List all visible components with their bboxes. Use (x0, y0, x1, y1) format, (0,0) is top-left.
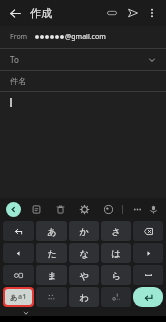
button[interactable]: Settings (77, 202, 91, 216)
button[interactable]: Theme (101, 202, 115, 216)
staticText: 件名 (10, 76, 26, 86)
staticText: To (10, 54, 19, 65)
button[interactable]: た (36, 243, 67, 263)
staticText: さ (111, 226, 121, 237)
staticText: た (47, 248, 57, 259)
button[interactable]: Key (3, 265, 34, 285)
button[interactable]: Hide keyboard (22, 309, 29, 316)
staticText: ま (47, 270, 57, 281)
staticText: は (111, 248, 121, 259)
staticText: あ (47, 226, 57, 237)
button[interactable]: Key (3, 221, 34, 241)
button[interactable]: Send (124, 4, 142, 22)
button[interactable]: Voice input (146, 202, 160, 216)
button[interactable]: さ (101, 221, 131, 241)
button[interactable]: More options (144, 5, 160, 21)
button[interactable] (0, 92, 166, 198)
button[interactable]: わ (69, 287, 99, 307)
button[interactable]: Key (3, 243, 34, 263)
staticText: @gmail.com (65, 32, 106, 42)
button[interactable]: あ (36, 221, 67, 241)
button[interactable]: か (69, 221, 99, 241)
button[interactable]: Key (36, 287, 67, 307)
button[interactable]: あ (3, 287, 34, 307)
button[interactable]: な (69, 243, 99, 263)
button[interactable]: ま (36, 265, 67, 285)
button[interactable]: Delete (53, 202, 67, 216)
staticText: ら (111, 270, 121, 281)
staticText: か (79, 226, 89, 237)
button[interactable]: Attach file (103, 4, 121, 22)
button[interactable]: Key (133, 221, 163, 241)
button[interactable]: 件名 (0, 71, 166, 91)
staticText: あ (10, 293, 18, 302)
button[interactable]: は (101, 243, 131, 263)
button[interactable]: Clipboard (29, 202, 43, 216)
staticText: 作成 (30, 6, 52, 20)
button[interactable]: Key (133, 265, 163, 285)
button[interactable]: Back (6, 4, 24, 22)
button[interactable]: Enter (133, 287, 163, 307)
button[interactable]: Key (101, 287, 131, 307)
button[interactable]: More (130, 202, 144, 216)
button[interactable]: Back (6, 202, 21, 217)
staticText: や (79, 270, 89, 281)
staticText: From (10, 32, 28, 42)
button[interactable]: ら (101, 265, 131, 285)
button[interactable]: Key (133, 243, 163, 263)
button[interactable]: From (0, 26, 166, 48)
staticText: な (79, 248, 89, 259)
staticText: a1 (18, 292, 27, 302)
button[interactable]: や (69, 265, 99, 285)
staticText: わ (79, 292, 89, 303)
button[interactable]: To (0, 49, 166, 70)
